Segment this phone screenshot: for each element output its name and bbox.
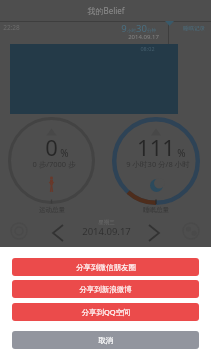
staticText: 22:28: [3, 23, 20, 32]
staticText: 睡眠总量: [143, 206, 169, 214]
staticText: 2014.09.17: [128, 33, 159, 41]
staticText: 111: [137, 132, 175, 162]
staticText: 0: [45, 132, 58, 162]
button[interactable]: 分享到QQ空间: [12, 303, 199, 321]
staticText: 分享到微信朋友圈: [76, 263, 136, 272]
staticText: 0 步/7000 步: [32, 159, 76, 169]
staticText: 我的Belief: [87, 5, 125, 16]
staticText: 运动总量: [39, 206, 65, 214]
staticText: %: [177, 146, 186, 160]
staticText: 分享到QQ空间: [81, 307, 131, 317]
button[interactable]: 111: [112, 117, 200, 215]
button[interactable]: 星期三: [71, 219, 141, 239]
staticText: 9 小时30 分/8 小时: [126, 159, 190, 169]
button[interactable]: Previous day: [47, 223, 68, 243]
button[interactable]: 睡眠记录: [176, 21, 211, 35]
staticText: 小时: [127, 28, 136, 34]
staticText: 30: [136, 22, 147, 35]
button[interactable]: 我的Belief: [0, 0, 211, 21]
button[interactable]: 分享到新浪微博: [12, 280, 199, 298]
staticText: 9: [121, 22, 127, 35]
staticText: 睡眠记录: [183, 25, 205, 32]
staticText: 星期三: [98, 219, 115, 226]
staticText: 分钟: [147, 28, 156, 34]
staticText: 分享到新浪微博: [79, 285, 132, 294]
staticText: 2014.09.17: [82, 225, 131, 238]
button[interactable]: 分享到微信朋友圈: [12, 258, 199, 276]
staticText: %: [60, 146, 69, 160]
button[interactable]: 取消: [12, 331, 199, 349]
button[interactable]: 0: [8, 117, 95, 215]
staticText: 取消: [98, 336, 113, 345]
button[interactable]: Next day: [143, 223, 164, 243]
staticText: 08:02: [140, 45, 155, 52]
